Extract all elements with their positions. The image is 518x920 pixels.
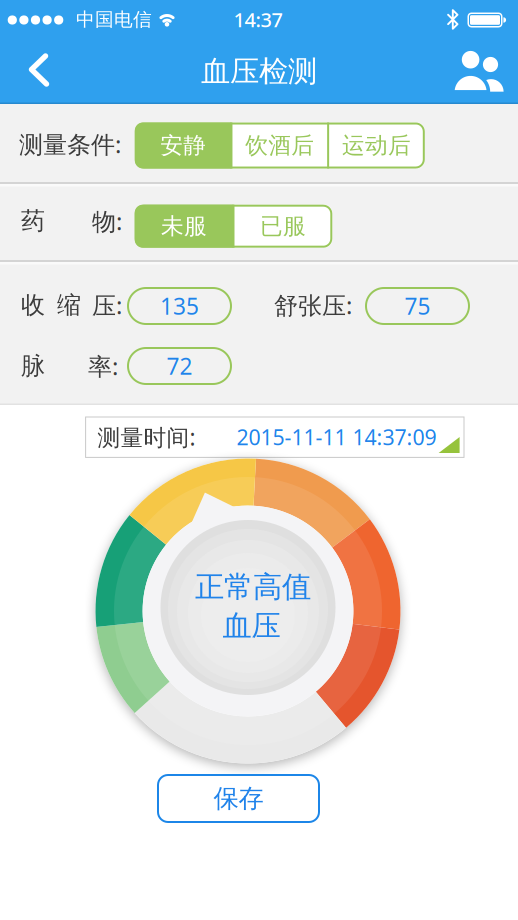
staticText: 缩 [57, 290, 81, 320]
staticText: 未服 [161, 212, 207, 240]
staticText: 物: [92, 205, 122, 237]
staticText: 脉 [21, 351, 45, 381]
staticText: 舒张压: [274, 289, 352, 321]
staticText: 测量条件: [19, 128, 121, 160]
staticText: 率: [88, 350, 118, 382]
staticText: 保存 [213, 783, 263, 814]
staticText: 血压 [222, 608, 280, 644]
staticText: 压: [92, 289, 122, 321]
button[interactable] [446, 41, 510, 99]
staticText: 中国电信 [76, 8, 152, 31]
staticText: 安静 [160, 132, 206, 159]
staticText: 运动后 [342, 132, 411, 159]
button[interactable]: 饮酒后 [231, 122, 328, 168]
button[interactable] [8, 40, 72, 100]
staticText: 饮酒后 [245, 132, 314, 159]
staticText: 75 [404, 291, 430, 321]
staticText: 血压检测 [201, 53, 317, 89]
staticText: 测量时间: [98, 422, 196, 452]
staticText: 135 [160, 291, 199, 321]
staticText: 正常高值 [195, 569, 311, 605]
staticText: 14:37 [233, 6, 282, 33]
button[interactable]: 安静 [135, 122, 231, 168]
staticText: 2015-11-11 14:37:09 [237, 423, 437, 451]
staticText: 药 [21, 206, 45, 236]
staticText: 收 [21, 290, 45, 320]
staticText: 已服 [260, 212, 306, 240]
button[interactable]: 测量时间: [86, 417, 464, 457]
button[interactable]: 保存 [157, 774, 320, 823]
staticText: 72 [166, 351, 192, 381]
button[interactable]: 未服 [135, 205, 233, 248]
button[interactable]: 75 [365, 287, 470, 325]
button[interactable]: 72 [127, 347, 232, 385]
button[interactable]: 已服 [233, 205, 332, 248]
button[interactable]: 135 [127, 287, 232, 325]
button[interactable]: 运动后 [328, 122, 425, 168]
